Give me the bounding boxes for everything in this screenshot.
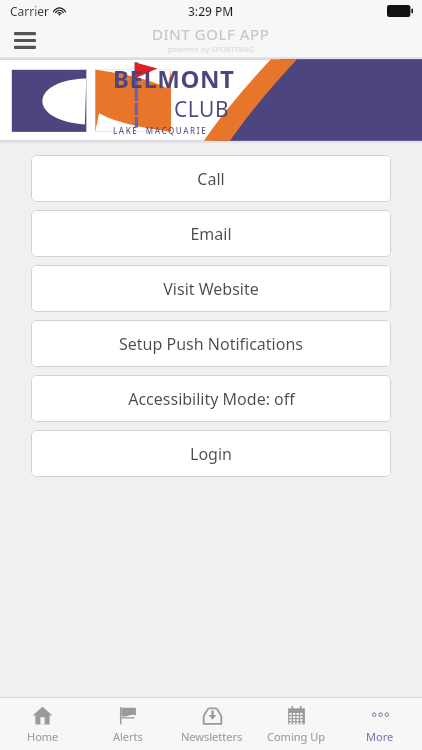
staticText: GOLF xyxy=(113,95,169,124)
staticText: Home xyxy=(27,729,59,744)
staticText: Accessibility Mode: off xyxy=(128,388,295,410)
staticText: Email xyxy=(190,223,232,245)
staticText: Coming Up xyxy=(267,729,325,744)
button[interactable]: Visit Website xyxy=(31,265,391,312)
staticText: Call xyxy=(197,168,225,190)
button[interactable]: Alerts xyxy=(85,698,170,750)
staticText: Visit Website xyxy=(163,278,259,300)
button[interactable]: Newsletters xyxy=(170,698,254,750)
button[interactable]: Login xyxy=(31,430,391,477)
button[interactable]: Email xyxy=(31,210,391,257)
staticText: LAKE MACQUARIE xyxy=(113,125,208,136)
staticText: 3:29 PM xyxy=(188,3,234,19)
staticText: More xyxy=(366,729,394,744)
button[interactable]: Accessibility Mode: off xyxy=(31,375,391,422)
staticText: CLUB xyxy=(174,95,230,124)
button[interactable]: Coming Up xyxy=(254,698,338,750)
button[interactable]: More xyxy=(338,698,422,750)
staticText: BELMONT xyxy=(113,62,235,95)
button[interactable]: Setup Push Notifications xyxy=(31,320,391,367)
button[interactable]: Home xyxy=(0,698,85,750)
staticText: Newsletters xyxy=(181,729,243,744)
staticText: Setup Push Notifications xyxy=(119,333,303,355)
button[interactable]: Menu xyxy=(8,23,42,57)
button[interactable]: Call xyxy=(31,155,391,202)
staticText: Login xyxy=(190,443,232,465)
staticText: Carrier xyxy=(10,3,50,19)
staticText: powered by SPORTSBAG xyxy=(168,45,254,55)
staticText: DINT GOLF APP xyxy=(152,24,270,44)
staticText: Alerts xyxy=(113,729,143,744)
